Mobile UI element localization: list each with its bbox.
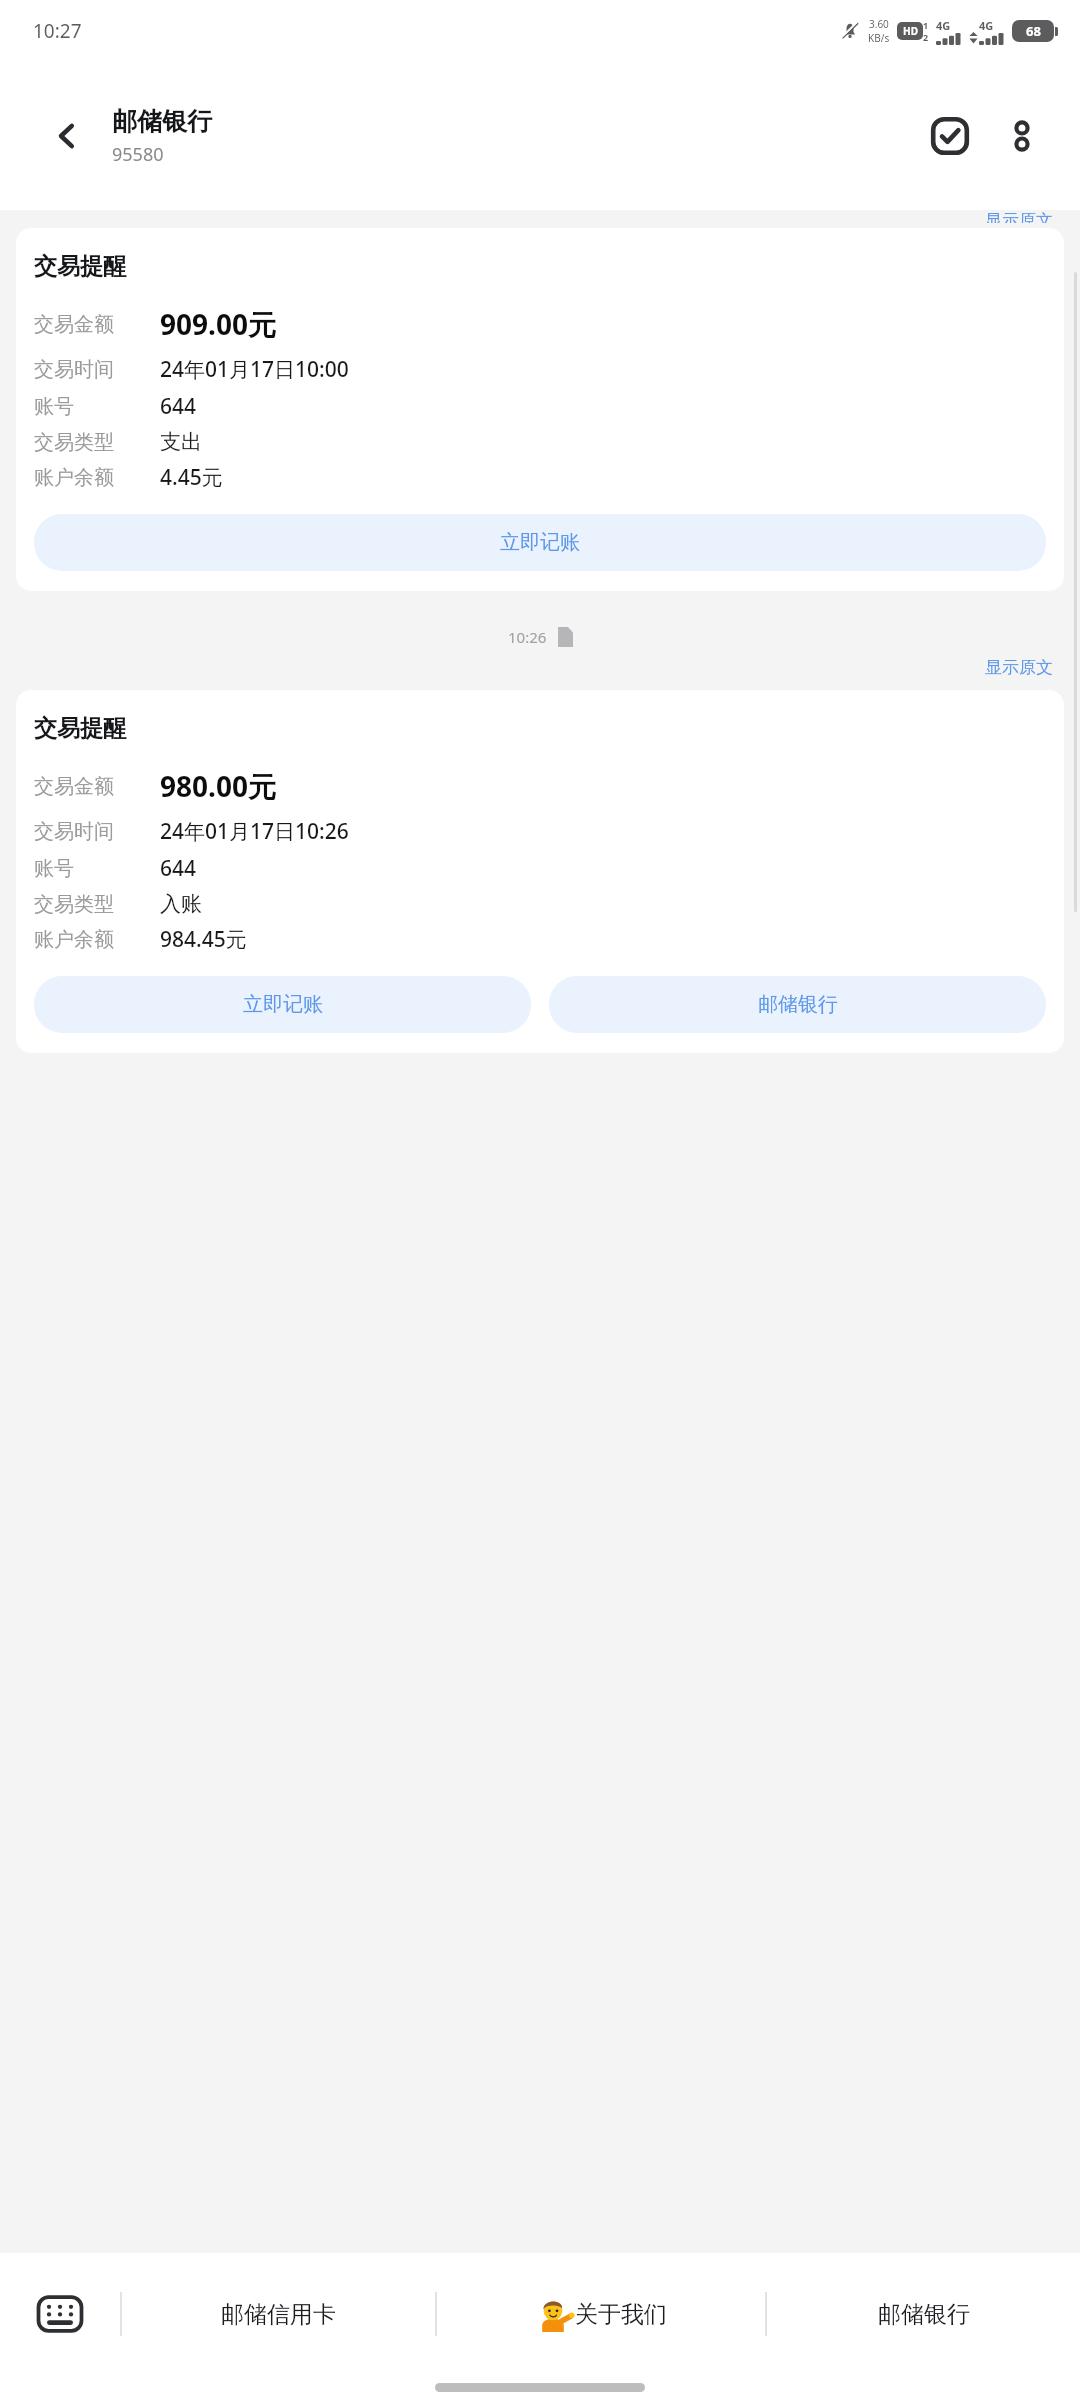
staticText: 账号 — [34, 856, 160, 881]
staticText: 4G — [936, 18, 951, 33]
button[interactable]: 交易提醒 — [16, 690, 1064, 1053]
staticText: 2 — [923, 31, 929, 43]
staticText: 关于我们 — [575, 2300, 667, 2329]
button[interactable]: 显示原文 — [975, 654, 1080, 681]
button[interactable]: Keyboard — [0, 2275, 120, 2353]
button[interactable]: 交易提醒 — [16, 228, 1064, 591]
staticText: 1 — [923, 19, 929, 31]
staticText: 邮储银行 — [758, 992, 838, 1017]
staticText: 4G — [979, 18, 994, 33]
button[interactable]: 关于我们 — [437, 2275, 765, 2353]
staticText: 邮储银行 — [878, 2300, 970, 2329]
staticText: 交易提醒 — [34, 252, 126, 281]
staticText: 980.00元 — [160, 767, 276, 805]
staticText: 账户余额 — [34, 465, 160, 490]
staticText: 邮储信用卡 — [221, 2300, 336, 2329]
button[interactable]: Select — [914, 100, 986, 172]
button[interactable]: 立即记账 — [34, 976, 531, 1033]
staticText: 邮储银行 — [112, 106, 212, 137]
staticText: 交易金额 — [34, 312, 160, 337]
staticText: 909.00元 — [160, 305, 276, 343]
staticText: 10:27 — [33, 18, 82, 44]
staticText: 立即记账 — [243, 992, 323, 1017]
staticText: 交易时间 — [34, 819, 160, 844]
button[interactable]: 邮储银行 — [767, 2275, 1080, 2353]
button[interactable]: 邮储信用卡 — [122, 2275, 435, 2353]
staticText: 68 — [1026, 22, 1041, 40]
staticText: 交易提醒 — [34, 714, 126, 743]
staticText: 账户余额 — [34, 927, 160, 952]
staticText: 交易时间 — [34, 357, 160, 382]
staticText: 24年01月17日10:26 — [160, 817, 349, 846]
staticText: 交易金额 — [34, 774, 160, 799]
staticText: 984.45元 — [160, 925, 247, 954]
staticText: 95580 — [112, 142, 164, 167]
staticText: 4.45元 — [160, 463, 223, 492]
staticText: HD — [903, 24, 918, 38]
staticText: 显示原文 — [985, 210, 1053, 223]
staticText: 账号 — [34, 394, 160, 419]
staticText: 交易类型 — [34, 892, 160, 917]
staticText: 显示原文 — [985, 657, 1053, 678]
staticText: 立即记账 — [500, 530, 580, 555]
staticText: 支出 — [160, 429, 202, 455]
staticText: 入账 — [160, 891, 202, 917]
button[interactable]: More options — [986, 100, 1058, 172]
staticText: 644 — [160, 392, 197, 421]
staticText: 交易类型 — [34, 430, 160, 455]
staticText: 3.60 — [869, 17, 889, 31]
button[interactable]: Back — [38, 107, 96, 165]
staticText: KB/s — [868, 31, 890, 45]
button[interactable]: 立即记账 — [34, 514, 1046, 571]
staticText: 10:26 — [508, 627, 547, 647]
button[interactable]: 邮储银行 — [549, 976, 1046, 1033]
staticText: 24年01月17日10:00 — [160, 355, 349, 384]
staticText: 644 — [160, 854, 197, 883]
